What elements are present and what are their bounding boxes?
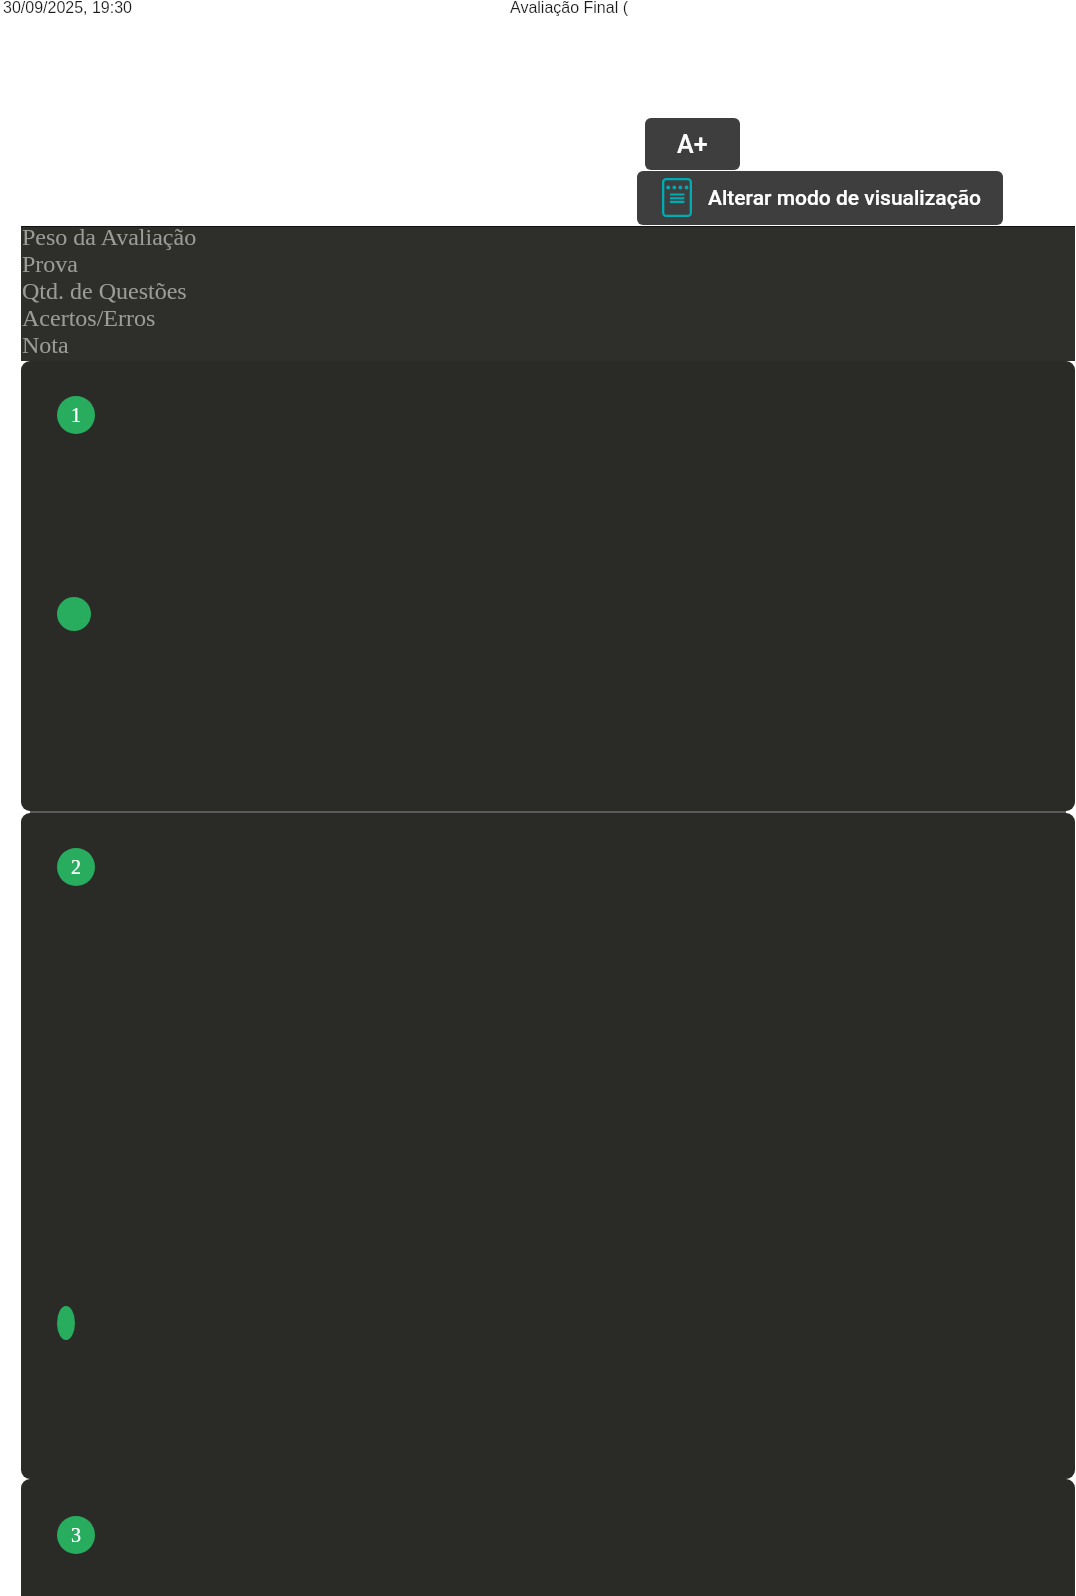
staticText: Avaliação Final (: [510, 0, 628, 17]
staticText: Prova: [22, 251, 78, 278]
staticText: Alterar modo de visualização: [708, 186, 981, 211]
staticText: Nota: [22, 332, 69, 359]
other: Alterar modo de visualização: [662, 178, 693, 218]
staticText: Peso da Avaliação: [22, 224, 197, 251]
staticText: Acertos/Erros: [22, 305, 156, 332]
button[interactable]: A+: [645, 118, 740, 170]
staticText: A+: [677, 130, 708, 159]
button[interactable]: 1: [21, 361, 1075, 811]
staticText: 30/09/2025, 19:30: [3, 0, 133, 17]
staticText: 3: [71, 1524, 81, 1546]
staticText: 1: [71, 404, 81, 426]
staticText: 2: [71, 856, 81, 878]
button[interactable]: 2: [21, 813, 1075, 1479]
other: Status: [57, 1306, 75, 1340]
staticText: Qtd. de Questões: [22, 278, 187, 305]
button[interactable]: Alterar modo de visualização: [637, 171, 1003, 225]
button[interactable]: 3: [21, 1479, 1075, 1596]
other: Status: [57, 597, 91, 631]
